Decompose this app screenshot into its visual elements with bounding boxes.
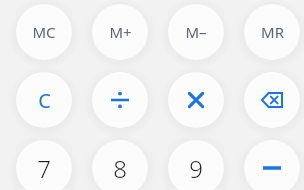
button[interactable]: Eight bbox=[92, 140, 148, 190]
button[interactable]: Divide bbox=[92, 72, 148, 128]
staticText: M+ bbox=[109, 22, 132, 42]
staticText: 8 bbox=[113, 152, 127, 185]
staticText: M– bbox=[185, 22, 207, 42]
button[interactable]: Memory clear bbox=[16, 4, 72, 60]
staticText: 7 bbox=[37, 152, 51, 185]
button[interactable]: Subtract bbox=[244, 140, 300, 190]
button[interactable]: Clear bbox=[16, 72, 72, 128]
button[interactable]: Multiply bbox=[168, 72, 224, 128]
button[interactable]: Seven bbox=[16, 140, 72, 190]
button[interactable]: Memory subtract bbox=[168, 4, 224, 60]
button[interactable]: Memory recall bbox=[244, 4, 300, 60]
button[interactable]: Nine bbox=[168, 140, 224, 190]
staticText: C bbox=[38, 87, 51, 114]
staticText: MR bbox=[261, 22, 284, 42]
staticText: MC bbox=[32, 22, 56, 42]
staticText: 9 bbox=[189, 152, 203, 185]
button[interactable]: Backspace bbox=[244, 72, 300, 128]
button[interactable]: Memory add bbox=[92, 4, 148, 60]
